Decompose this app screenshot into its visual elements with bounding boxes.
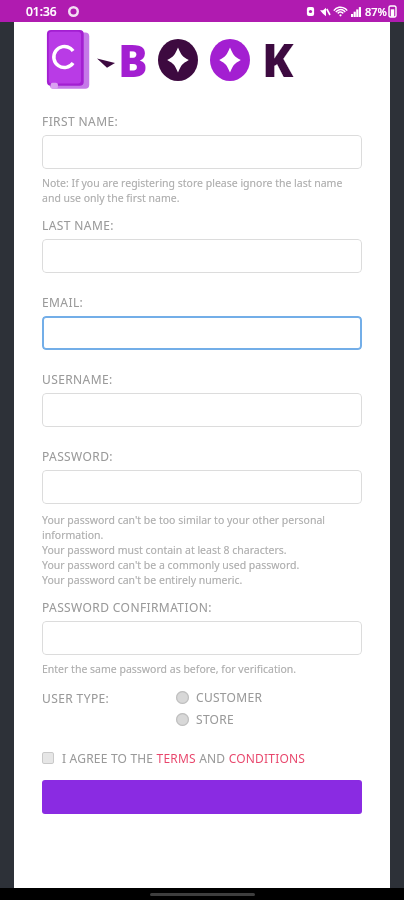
staticText: EMAIL: — [42, 294, 84, 310]
staticText: I AGREE TO THE TERMS AND CONDITIONS — [62, 750, 306, 766]
staticText: USER TYPE: — [42, 690, 110, 706]
staticText: FIRST NAME: — [42, 113, 119, 129]
button[interactable]: I AGREE TO THE TERMS AND CONDITIONS — [42, 750, 362, 766]
staticText: 87% — [365, 4, 387, 19]
staticText: K — [262, 28, 294, 91]
staticText: Enter the same password as before, for v… — [42, 662, 297, 676]
button[interactable] — [42, 393, 362, 427]
button[interactable] — [42, 621, 362, 655]
staticText: Your password can't be too similar to yo… — [42, 513, 326, 587]
staticText: 01:36 — [26, 3, 57, 19]
button[interactable]: STORE — [176, 710, 235, 728]
button[interactable] — [42, 135, 362, 169]
button[interactable]: Register — [42, 780, 362, 814]
staticText: STORE — [196, 711, 235, 727]
button[interactable]: CUSTOMER — [176, 688, 263, 706]
staticText: USERNAME: — [42, 371, 113, 387]
staticText: LAST NAME: — [42, 217, 114, 233]
staticText: CUSTOMER — [196, 689, 263, 705]
staticText: Note: If you are registering store pleas… — [42, 176, 343, 205]
button[interactable] — [42, 470, 362, 504]
button[interactable] — [42, 239, 362, 273]
staticText: B — [118, 30, 148, 90]
staticText: PASSWORD CONFIRMATION: — [42, 599, 212, 615]
button[interactable] — [42, 316, 362, 350]
staticText: PASSWORD: — [42, 448, 113, 464]
